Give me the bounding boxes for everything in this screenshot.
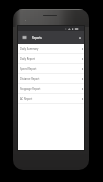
button[interactable]: Open navigation menu (19, 31, 29, 44)
button[interactable]: Distance Report (18, 74, 84, 84)
staticText: Daily Summary (20, 47, 39, 51)
button[interactable]: AC Report (18, 94, 84, 104)
staticText: Stoppage Report (20, 87, 41, 91)
button[interactable]: Home (76, 31, 83, 44)
button[interactable]: Daily Report (18, 54, 84, 64)
button[interactable]: Daily Summary (18, 44, 84, 54)
button[interactable]: Stoppage Report (18, 84, 84, 94)
staticText: AC Report (20, 97, 33, 101)
staticText: Daily Report (20, 57, 35, 61)
staticText: Speed Report (20, 67, 37, 71)
staticText: Reports (32, 36, 42, 40)
staticText: Distance Report (20, 77, 40, 81)
button[interactable]: Speed Report (18, 64, 84, 74)
